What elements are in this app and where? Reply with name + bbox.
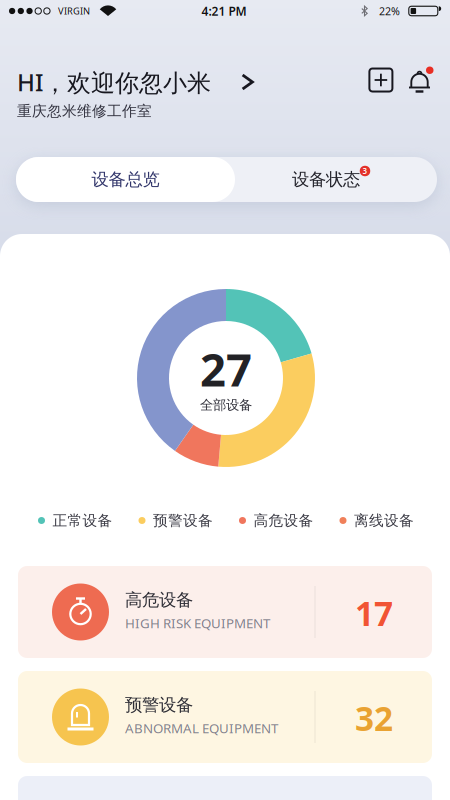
staticText: 32: [355, 696, 393, 740]
staticText: 高危设备: [125, 589, 193, 611]
staticText: 预警设备: [125, 694, 193, 716]
staticText: VIRGIN: [58, 5, 90, 17]
staticText: ABNORMAL EQUIPMENT: [125, 719, 278, 737]
staticText: 4:21 PM: [201, 3, 246, 19]
staticText: 离线设备: [354, 511, 414, 529]
staticText: 全部设备: [200, 397, 252, 413]
staticText: 正常设备: [52, 511, 112, 529]
button[interactable]: 设备总览: [16, 157, 235, 202]
staticText: 预警设备: [153, 511, 213, 529]
staticText: 3: [362, 166, 367, 176]
staticText: 设备总览: [91, 169, 159, 190]
staticText: 高危设备: [253, 511, 313, 529]
staticText: 重庆忽米维修工作室: [17, 102, 152, 120]
button[interactable]: 高危设备: [18, 566, 432, 658]
staticText: 设备状态: [292, 169, 360, 190]
button[interactable]: 预警设备: [18, 671, 432, 763]
button[interactable]: Add device: [369, 68, 392, 91]
staticText: HIGH RISK EQUIPMENT: [125, 614, 270, 632]
button[interactable]: 设备状态: [235, 157, 437, 202]
staticText: 27: [200, 339, 252, 399]
staticText: 17: [355, 591, 393, 635]
staticText: HI，欢迎你忽小米: [17, 66, 211, 98]
button[interactable]: HI，欢迎你忽小米: [17, 66, 254, 98]
button[interactable]: Notifications: [407, 66, 432, 94]
staticText: 22%: [379, 4, 400, 18]
